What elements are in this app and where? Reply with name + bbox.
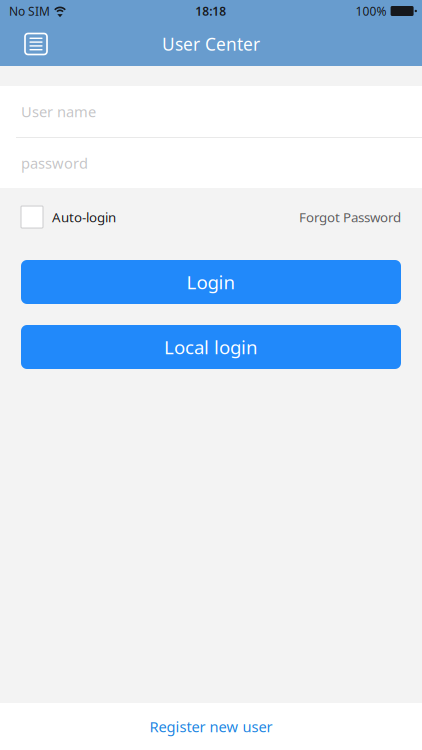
staticText: No SIM bbox=[9, 3, 50, 19]
staticText: 100% bbox=[356, 3, 387, 19]
staticText: password bbox=[21, 153, 88, 173]
staticText: Forgot Password bbox=[299, 208, 401, 226]
staticText: 18:18 bbox=[195, 3, 226, 19]
button[interactable]: Forgot Password bbox=[299, 208, 401, 226]
button[interactable]: Menu bbox=[13, 23, 59, 65]
staticText: User name bbox=[21, 102, 96, 121]
staticText: Auto-login bbox=[52, 208, 116, 226]
button[interactable]: Local login bbox=[21, 325, 401, 369]
staticText: Register new user bbox=[149, 717, 272, 736]
staticText: Local login bbox=[164, 335, 258, 359]
staticText: Login bbox=[186, 270, 235, 294]
button[interactable]: Login bbox=[21, 260, 401, 304]
button[interactable]: Register new user bbox=[0, 703, 422, 750]
button[interactable]: Auto-login bbox=[21, 206, 116, 228]
staticText: User Center bbox=[162, 32, 260, 55]
